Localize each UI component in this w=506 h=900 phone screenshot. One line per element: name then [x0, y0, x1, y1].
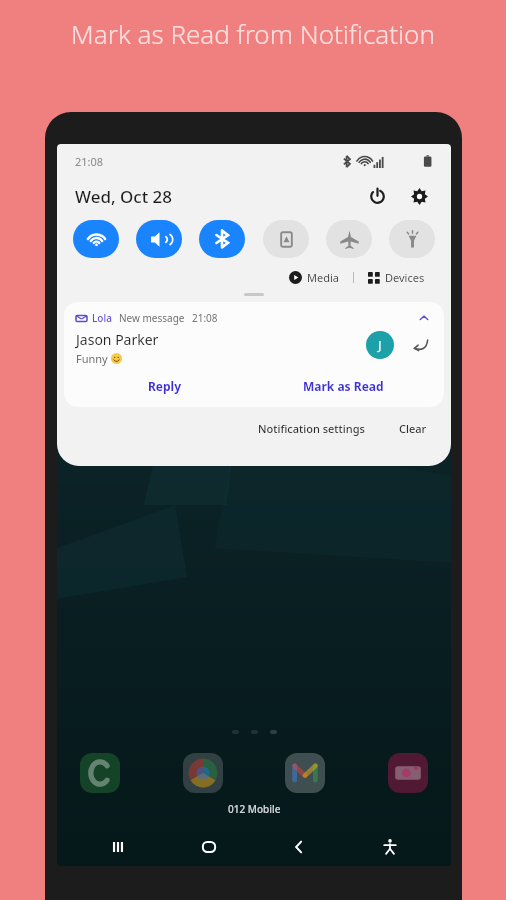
button[interactable]: Recents [88, 828, 148, 866]
button[interactable]: Back [269, 828, 329, 866]
staticText: Notification settings [258, 421, 365, 436]
button[interactable]: Airplane mode [326, 220, 372, 258]
button[interactable]: Chrome [180, 750, 226, 796]
staticText: J [378, 336, 382, 354]
button[interactable]: Devices [364, 268, 429, 287]
staticText: Devices [385, 270, 425, 285]
button[interactable]: Mark as Read [254, 375, 432, 397]
button[interactable]: Settings [405, 182, 433, 210]
button[interactable]: Auto rotate [263, 220, 309, 258]
button[interactable]: Accessibility [360, 828, 420, 866]
button[interactable]: Wi-Fi [73, 220, 119, 258]
staticText: Jason Parker [76, 330, 159, 349]
button[interactable]: Bluetooth [199, 220, 245, 258]
button[interactable]: Notification settings [252, 417, 371, 440]
staticText: Mark as Read from Notification [0, 16, 506, 51]
staticText: Media [307, 270, 339, 285]
staticText: Funny [76, 351, 108, 366]
button[interactable]: Phone [77, 750, 123, 796]
button[interactable]: Power off [363, 182, 391, 210]
staticText: New message [119, 311, 185, 325]
button[interactable]: Sound [136, 220, 182, 258]
button[interactable]: Gmail [282, 750, 328, 796]
button[interactable]: Reply [76, 375, 254, 397]
button[interactable]: Home [179, 828, 239, 866]
staticText: Clear [399, 421, 427, 436]
button[interactable]: Clear [393, 417, 433, 440]
button[interactable]: Reply inline [408, 333, 432, 357]
staticText: 21:08 [75, 154, 104, 169]
staticText: 012 Mobile [228, 802, 281, 816]
button[interactable]: Flashlight [389, 220, 435, 258]
staticText: Mark as Read [303, 378, 384, 394]
staticText: Lola [92, 311, 112, 325]
button[interactable]: Collapse [416, 310, 432, 326]
staticText: 21:08 [192, 311, 218, 325]
button[interactable]: Lola [64, 302, 444, 407]
staticText: Wed, Oct 28 [75, 185, 173, 208]
button[interactable]: Media [285, 268, 343, 287]
button[interactable]: Camera [385, 750, 431, 796]
staticText: Reply [148, 378, 182, 394]
